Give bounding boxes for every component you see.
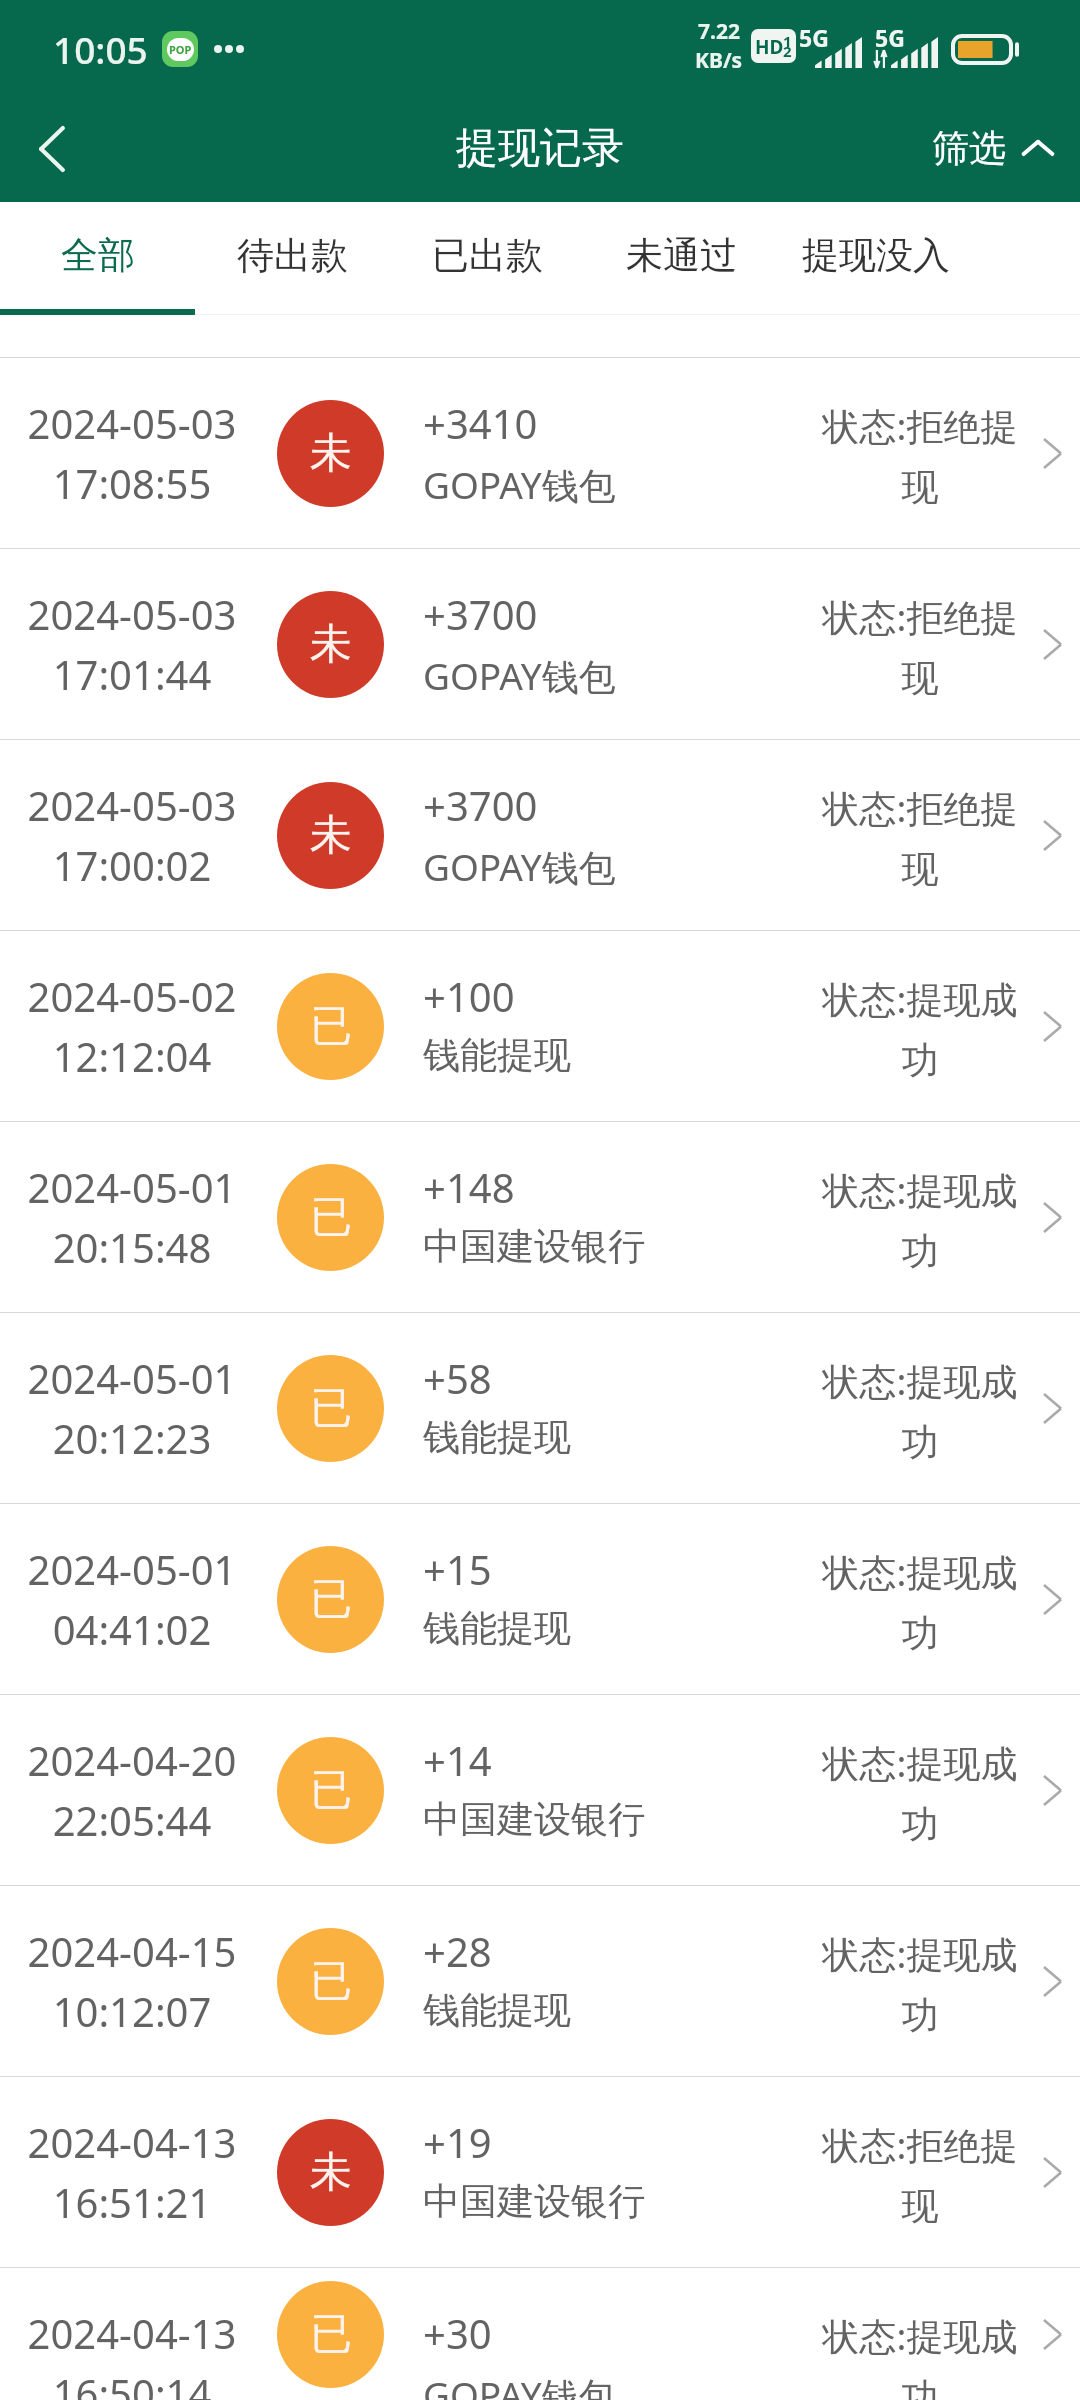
staticText: 全部 bbox=[61, 232, 135, 279]
button[interactable]: 2024-05-03 bbox=[0, 549, 1080, 739]
staticText: KB/s bbox=[695, 46, 743, 75]
staticText: 5G bbox=[799, 22, 829, 53]
staticText: 已 bbox=[310, 1382, 352, 1435]
button[interactable]: 2024-05-02 bbox=[0, 931, 1080, 1121]
staticText: 22:05:44 bbox=[24, 1793, 240, 1847]
staticText: 20:15:48 bbox=[24, 1220, 240, 1274]
staticText: 状态:拒绝提现 bbox=[818, 2119, 1022, 2230]
staticText: 钱能提现 bbox=[423, 1414, 723, 1461]
staticText: 04:41:02 bbox=[24, 1602, 240, 1656]
staticText: +15 bbox=[423, 1542, 723, 1596]
staticText: 7.22 bbox=[698, 17, 740, 46]
staticText: 已出款 bbox=[432, 232, 543, 279]
staticText: 2024-05-03 bbox=[24, 587, 240, 641]
staticText: +3410 bbox=[423, 396, 723, 450]
staticText: 中国建设银行 bbox=[423, 1223, 723, 1270]
staticText: 2024-04-20 bbox=[24, 1733, 240, 1787]
staticText: 17:01:44 bbox=[24, 647, 240, 701]
staticText: HD bbox=[755, 34, 784, 60]
button[interactable]: Back bbox=[0, 95, 110, 202]
staticText: 筛选 bbox=[932, 125, 1006, 172]
staticText: GOPAY钱包 bbox=[423, 459, 723, 510]
staticText: 10:12:07 bbox=[24, 1984, 240, 2038]
staticText: +148 bbox=[423, 1160, 723, 1214]
staticText: 2024-05-01 bbox=[24, 1542, 240, 1596]
staticText: +14 bbox=[423, 1733, 723, 1787]
staticText: 钱能提现 bbox=[423, 1605, 723, 1652]
button[interactable]: 2024-05-03 bbox=[0, 358, 1080, 548]
staticText: GOPAY钱包 bbox=[423, 2369, 723, 2400]
staticText: 中国建设银行 bbox=[423, 2178, 723, 2225]
staticText: 1 bbox=[783, 31, 792, 51]
staticText: 10:05 bbox=[53, 24, 148, 74]
staticText: +3700 bbox=[423, 778, 723, 832]
staticText: 提现没入 bbox=[802, 232, 950, 279]
staticText: 12:12:04 bbox=[24, 1029, 240, 1083]
button[interactable]: 2024-05-01 bbox=[0, 1313, 1080, 1503]
staticText: 状态:拒绝提现 bbox=[818, 400, 1022, 511]
button[interactable]: 未通过 bbox=[583, 202, 779, 309]
staticText: 状态:提现成功 bbox=[818, 973, 1022, 1084]
staticText: 2024-05-03 bbox=[24, 778, 240, 832]
button[interactable]: 2024-05-01 bbox=[0, 1504, 1080, 1694]
staticText: 20:12:23 bbox=[24, 1411, 240, 1465]
staticText: POP bbox=[169, 42, 192, 57]
staticText: 2024-05-01 bbox=[24, 1160, 240, 1214]
staticText: 2024-05-03 bbox=[24, 396, 240, 450]
staticText: +58 bbox=[423, 1351, 723, 1405]
staticText: 状态:提现成功 bbox=[818, 1928, 1022, 2039]
staticText: 状态:拒绝提现 bbox=[818, 591, 1022, 702]
button[interactable]: 2024-04-20 bbox=[0, 1695, 1080, 1885]
staticText: 状态:提现成功 bbox=[818, 1546, 1022, 1657]
staticText: 未 bbox=[310, 809, 352, 862]
staticText: 已 bbox=[310, 1764, 352, 1817]
staticText: 16:51:21 bbox=[24, 2175, 240, 2229]
staticText: 已 bbox=[310, 2308, 352, 2361]
staticText: 提现记录 bbox=[456, 122, 624, 175]
staticText: 钱能提现 bbox=[423, 1032, 723, 1079]
staticText: 状态:拒绝提现 bbox=[818, 782, 1022, 893]
staticText: +28 bbox=[423, 1924, 723, 1978]
staticText: 2 bbox=[783, 41, 792, 61]
staticText: 未 bbox=[310, 618, 352, 671]
button[interactable]: 2024-04-13 bbox=[0, 2268, 1080, 2400]
button[interactable]: 全部 bbox=[0, 202, 196, 309]
staticText: 16:50:14 bbox=[24, 2366, 240, 2400]
staticText: +100 bbox=[423, 969, 723, 1023]
staticText: GOPAY钱包 bbox=[423, 650, 723, 701]
staticText: 2024-05-01 bbox=[24, 1351, 240, 1405]
staticText: +30 bbox=[423, 2306, 723, 2360]
staticText: 2024-04-13 bbox=[24, 2115, 240, 2169]
staticText: 未 bbox=[310, 427, 352, 480]
staticText: 2024-04-15 bbox=[24, 1924, 240, 1978]
button[interactable]: 2024-05-01 bbox=[0, 1122, 1080, 1312]
staticText: 状态:提现成功 bbox=[818, 1737, 1022, 1848]
staticText: 2024-04-13 bbox=[24, 2306, 240, 2360]
staticText: 中国建设银行 bbox=[423, 1796, 723, 1843]
button[interactable]: 2024-05-03 bbox=[0, 740, 1080, 930]
staticText: GOPAY钱包 bbox=[423, 841, 723, 892]
button[interactable]: 待出款 bbox=[194, 202, 390, 309]
staticText: 已 bbox=[310, 1955, 352, 2008]
staticText: 17:08:55 bbox=[24, 456, 240, 510]
button[interactable]: 筛选 Filter bbox=[916, 95, 1080, 202]
staticText: +19 bbox=[423, 2115, 723, 2169]
button[interactable]: 提现没入 bbox=[778, 202, 974, 309]
staticText: 已 bbox=[310, 1573, 352, 1626]
staticText: 状态:提现成功 bbox=[818, 1164, 1022, 1275]
staticText: 状态:提现成功 bbox=[818, 2310, 1022, 2400]
staticText: 未通过 bbox=[626, 232, 737, 279]
staticText: 未 bbox=[310, 2146, 352, 2199]
staticText: 5G bbox=[875, 22, 905, 53]
button[interactable]: 已出款 bbox=[389, 202, 585, 309]
button[interactable]: 2024-04-13 bbox=[0, 2077, 1080, 2267]
button[interactable]: 2024-04-15 bbox=[0, 1886, 1080, 2076]
staticText: 状态:提现成功 bbox=[818, 1355, 1022, 1466]
staticText: 待出款 bbox=[237, 232, 348, 279]
staticText: 已 bbox=[310, 1191, 352, 1244]
staticText: 已 bbox=[310, 1000, 352, 1053]
staticText: 2024-05-02 bbox=[24, 969, 240, 1023]
staticText: 17:00:02 bbox=[24, 838, 240, 892]
staticText: +3700 bbox=[423, 587, 723, 641]
staticText: 钱能提现 bbox=[423, 1987, 723, 2034]
